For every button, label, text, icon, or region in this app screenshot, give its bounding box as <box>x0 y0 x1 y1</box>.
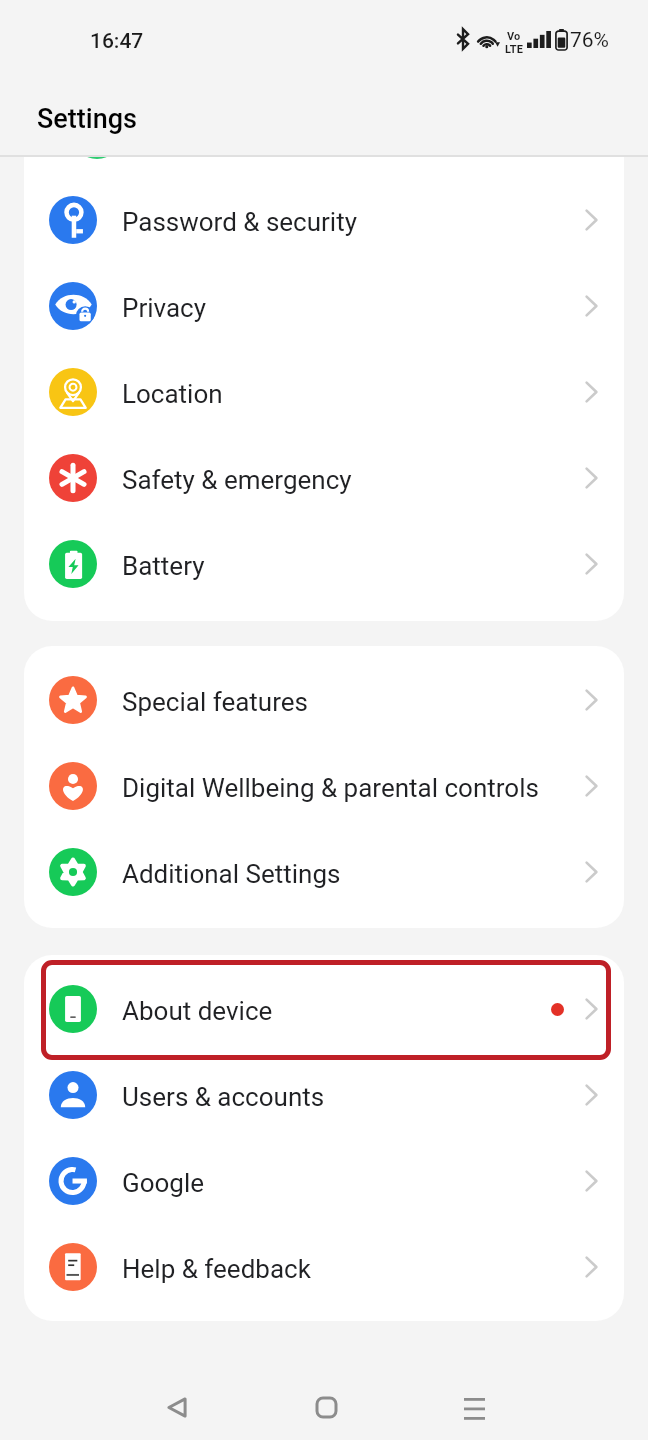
staticText: Users & accounts <box>122 1082 325 1112</box>
staticText: Vo <box>507 30 521 43</box>
staticText: Privacy <box>122 293 206 323</box>
button[interactable]: Location <box>24 349 624 435</box>
button[interactable]: Password & security <box>24 177 624 263</box>
button[interactable]: Google <box>24 1138 624 1224</box>
staticText: Help & feedback <box>122 1254 311 1284</box>
button[interactable]: Home <box>291 1372 361 1440</box>
staticText: 76% <box>570 28 609 53</box>
button[interactable]: Back <box>142 1372 212 1440</box>
staticText: About device <box>122 996 273 1026</box>
button[interactable]: Special features <box>24 657 624 743</box>
button[interactable]: Recent apps <box>439 1372 509 1440</box>
staticText: LTE <box>505 43 523 56</box>
button[interactable]: Privacy <box>24 263 624 349</box>
staticText: Password & security <box>122 207 358 237</box>
staticText: Settings <box>37 103 137 135</box>
button[interactable]: Digital Wellbeing & parental controls <box>24 743 624 829</box>
button[interactable]: About device <box>24 966 624 1052</box>
button[interactable]: Battery <box>24 521 624 607</box>
staticText: Digital Wellbeing & parental controls <box>122 773 539 803</box>
button[interactable]: Safety & emergency <box>24 435 624 521</box>
staticText: Battery <box>122 551 205 581</box>
button[interactable]: Users & accounts <box>24 1052 624 1138</box>
staticText: Additional Settings <box>122 859 341 889</box>
staticText: Safety & emergency <box>122 465 352 495</box>
button[interactable]: Help & feedback <box>24 1224 624 1310</box>
staticText: 16:47 <box>90 29 144 54</box>
staticText: Google <box>122 1168 205 1198</box>
button[interactable]: Additional Settings <box>24 829 624 915</box>
staticText: Location <box>122 379 223 409</box>
staticText: Special features <box>122 687 308 717</box>
